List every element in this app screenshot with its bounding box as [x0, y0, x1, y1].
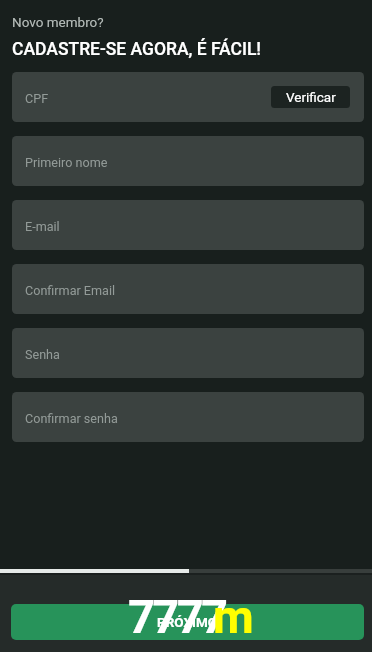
button[interactable]: PRÓXIMO: [11, 604, 364, 640]
button[interactable]: Confirmar Email: [12, 264, 364, 314]
button[interactable]: E-mail: [12, 200, 364, 250]
button[interactable]: Confirmar senha: [12, 392, 364, 442]
staticText: Confirmar Email: [25, 283, 116, 298]
button[interactable]: CPF: [12, 72, 364, 122]
staticText: CADASTRE-SE AGORA, É FÁCIL!: [12, 39, 262, 60]
button[interactable]: Verificar: [271, 86, 350, 108]
staticText: PRÓXIMO: [157, 614, 218, 630]
staticText: CPF: [25, 91, 49, 106]
button[interactable]: Senha: [12, 328, 364, 378]
staticText: Novo membro?: [12, 14, 104, 30]
staticText: Senha: [25, 347, 60, 362]
staticText: 7777: [128, 589, 226, 644]
button[interactable]: Primeiro nome: [12, 136, 364, 186]
staticText: Confirmar senha: [25, 411, 118, 426]
staticText: Primeiro nome: [25, 155, 108, 170]
staticText: m: [213, 589, 254, 644]
staticText: E-mail: [25, 219, 60, 234]
staticText: Verificar: [286, 89, 336, 105]
